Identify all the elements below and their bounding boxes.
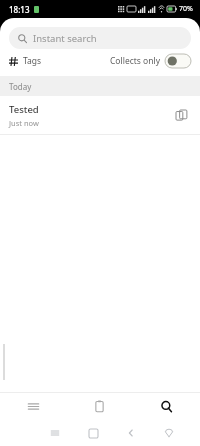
button[interactable]: Home [74,420,112,446]
button[interactable]: Back [112,420,150,446]
staticText: 18:13 [9,4,30,15]
staticText: Just now [9,118,39,128]
button[interactable]: Tags [9,55,42,67]
button[interactable]: Collects only [110,54,191,68]
staticText: Tested [9,103,39,116]
button[interactable]: Copy [171,105,191,125]
staticText: Today [9,81,32,92]
staticText: Tags [23,55,42,67]
button[interactable]: Instant search [9,27,191,49]
button[interactable]: Search [133,393,200,420]
staticText: Instant search [33,32,97,45]
button[interactable]: Recents [36,420,74,446]
button[interactable]: Download [150,420,188,446]
staticText: 70% [179,4,193,14]
button[interactable]: Menu [0,393,66,420]
button[interactable]: Tested [0,96,200,134]
staticText: Collects only [110,55,161,67]
button[interactable]: Clipboard [66,393,133,420]
